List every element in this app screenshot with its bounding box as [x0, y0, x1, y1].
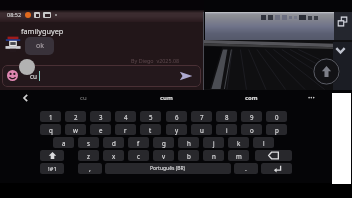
button[interactable]: cu — [2, 65, 201, 87]
staticText: r — [124, 126, 127, 134]
button[interactable]: Enter — [261, 163, 292, 174]
button[interactable]: x — [103, 150, 124, 161]
staticText: o — [250, 126, 254, 134]
button[interactable]: i — [216, 124, 237, 135]
button[interactable]: j — [203, 137, 224, 148]
staticText: t — [149, 126, 152, 134]
staticText: 8 — [225, 113, 229, 121]
staticText: 2 — [74, 113, 78, 121]
button[interactable]: 9 — [241, 111, 262, 122]
button[interactable]: g — [153, 137, 174, 148]
staticText: b — [187, 152, 191, 160]
button[interactable]: e — [90, 124, 111, 135]
button[interactable]: w — [65, 124, 86, 135]
button[interactable]: , — [78, 163, 102, 174]
staticText: Português (BR) — [150, 165, 186, 172]
staticText: y — [175, 126, 179, 134]
staticText: ok — [36, 41, 44, 51]
button[interactable]: cum — [140, 90, 192, 106]
staticText: h — [187, 139, 191, 147]
staticText: !#1 — [48, 165, 57, 173]
button[interactable]: Collapse — [334, 44, 347, 57]
staticText: e — [99, 126, 103, 134]
button[interactable]: !#1 — [40, 163, 64, 174]
staticText: i — [226, 126, 228, 134]
staticText: d — [112, 139, 116, 147]
staticText: . — [245, 164, 247, 174]
button[interactable]: p — [266, 124, 287, 135]
button[interactable]: 8 — [216, 111, 237, 122]
button[interactable]: Restore window — [337, 16, 348, 27]
button[interactable]: s — [78, 137, 99, 148]
button[interactable]: cu — [60, 90, 106, 106]
button[interactable]: z — [78, 150, 99, 161]
staticText: 6 — [175, 113, 179, 121]
button[interactable]: 6 — [166, 111, 187, 122]
button[interactable]: d — [103, 137, 124, 148]
staticText: 0 — [275, 113, 279, 121]
staticText: z — [87, 152, 90, 160]
staticText: q — [49, 126, 53, 134]
button[interactable]: Shift — [40, 150, 64, 161]
staticText: m — [236, 152, 242, 160]
staticText: cu — [80, 94, 87, 102]
button[interactable]: com — [225, 90, 277, 106]
button[interactable]: b — [178, 150, 199, 161]
staticText: 7 — [200, 113, 204, 121]
button[interactable]: t — [140, 124, 161, 135]
button[interactable]: 7 — [191, 111, 212, 122]
staticText: 3 — [99, 113, 103, 121]
button[interactable]: Português (BR) — [105, 163, 231, 174]
staticText: f — [137, 139, 140, 147]
button[interactable]: Send — [179, 69, 193, 83]
staticText: p — [275, 126, 279, 134]
staticText: , — [89, 164, 91, 174]
staticText: x — [112, 152, 116, 160]
staticText: v — [162, 152, 166, 160]
button[interactable]: ok — [25, 37, 54, 55]
staticText: u — [200, 126, 204, 134]
button[interactable]: k — [228, 137, 249, 148]
staticText: com — [245, 94, 258, 102]
button[interactable]: Backspace — [255, 150, 292, 161]
staticText: s — [87, 139, 90, 147]
staticText: familyguyep — [21, 26, 64, 36]
button[interactable]: f — [128, 137, 149, 148]
button[interactable]: h — [178, 137, 199, 148]
button[interactable]: m — [228, 150, 249, 161]
button[interactable]: 1 — [40, 111, 61, 122]
button[interactable]: More options — [300, 90, 322, 106]
button[interactable]: Back — [19, 91, 33, 105]
button[interactable]: q — [40, 124, 61, 135]
button[interactable]: r — [115, 124, 136, 135]
staticText: cu — [30, 72, 38, 81]
staticText: 4 — [124, 113, 128, 121]
staticText: w — [73, 126, 78, 134]
staticText: g — [162, 139, 166, 147]
staticText: 5 — [149, 113, 153, 121]
button[interactable]: 5 — [140, 111, 161, 122]
staticText: cum — [160, 94, 173, 102]
button[interactable]: o — [241, 124, 262, 135]
button[interactable]: y — [166, 124, 187, 135]
staticText: a — [62, 139, 66, 147]
button[interactable]: 2 — [65, 111, 86, 122]
staticText: n — [212, 152, 216, 160]
button[interactable]: . — [234, 163, 258, 174]
staticText: ••• — [308, 94, 315, 102]
button[interactable]: v — [153, 150, 174, 161]
staticText: j — [213, 139, 215, 147]
button[interactable]: a — [53, 137, 74, 148]
button[interactable]: 4 — [115, 111, 136, 122]
button[interactable]: n — [203, 150, 224, 161]
button[interactable]: u — [191, 124, 212, 135]
staticText: k — [237, 139, 241, 147]
button[interactable]: l — [253, 137, 274, 148]
button[interactable]: 3 — [90, 111, 111, 122]
button[interactable]: 0 — [266, 111, 287, 122]
staticText: 1 — [49, 113, 53, 121]
staticText: 9 — [250, 113, 254, 121]
button[interactable]: c — [128, 150, 149, 161]
staticText: 08:52 — [7, 11, 22, 18]
button[interactable]: Scroll to top — [313, 58, 340, 85]
